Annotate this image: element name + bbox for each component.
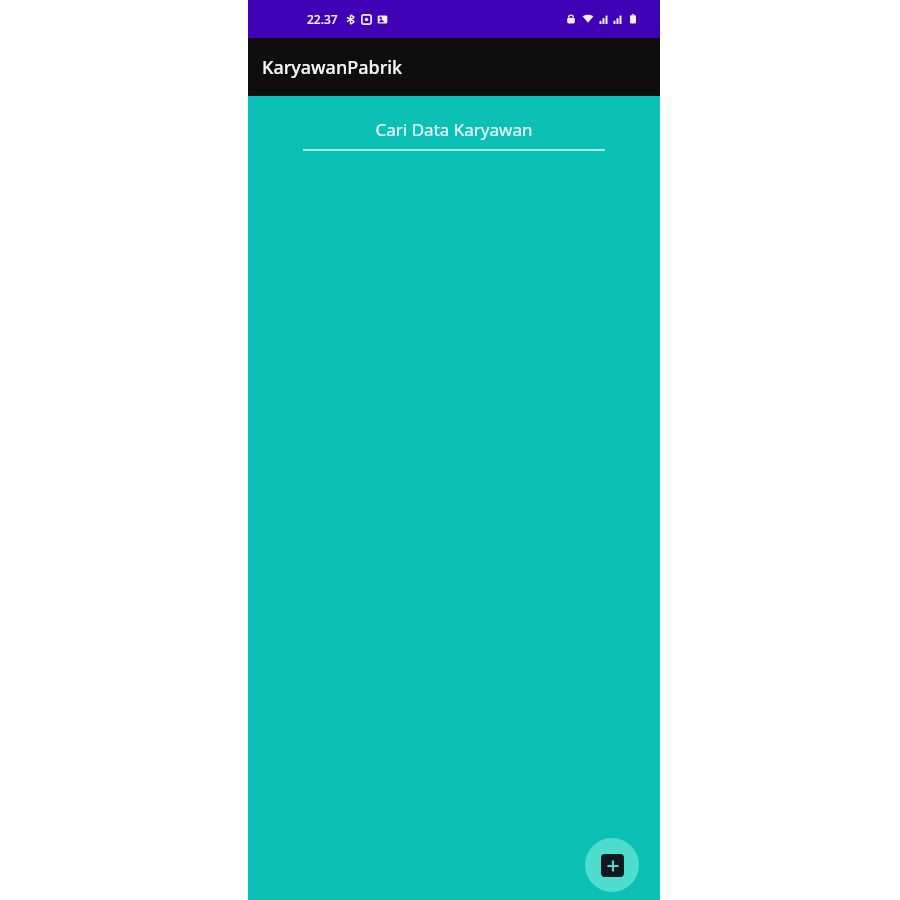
staticText: KaryawanPabrik [262,55,403,80]
staticText: 22.37 [307,11,338,27]
staticText: Cari Data Karyawan [303,118,605,141]
button[interactable]: Tambah data karyawan [585,838,639,892]
button[interactable]: Cari Data Karyawan [303,118,605,151]
